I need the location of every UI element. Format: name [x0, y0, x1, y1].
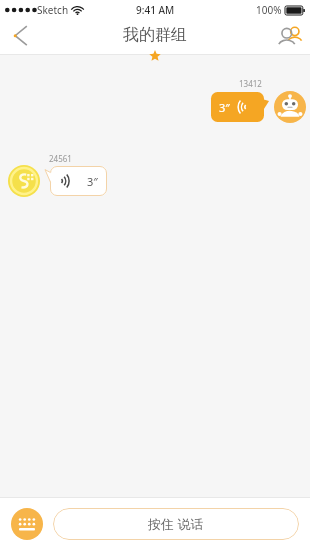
button[interactable]: Back: [0, 17, 42, 53]
button[interactable]: Keyboard: [11, 508, 43, 540]
staticText: Sketch: [37, 3, 69, 17]
staticText: 3″: [219, 100, 230, 115]
staticText: 按住 说话: [148, 515, 204, 533]
staticText: 13412: [239, 78, 262, 89]
staticText: 100%: [256, 3, 282, 17]
button[interactable]: Play voice message, 3 seconds: [45, 166, 107, 196]
staticText: 9:41 AM: [136, 3, 175, 17]
button[interactable]: Avatar: [274, 91, 306, 123]
button[interactable]: Play voice message, 3 seconds: [211, 92, 269, 122]
staticText: 3″: [87, 174, 98, 189]
staticText: 24561: [49, 153, 72, 164]
button[interactable]: Group members: [270, 17, 310, 53]
button[interactable]: 按住 说话: [53, 508, 299, 540]
staticText: 我的群组: [123, 25, 187, 45]
button[interactable]: Avatar: [8, 165, 40, 197]
